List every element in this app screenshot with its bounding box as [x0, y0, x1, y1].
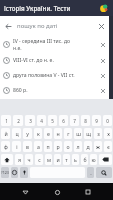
- button[interactable]: Insert suggestion: [96, 69, 109, 82]
- staticText: 8: [84, 118, 87, 124]
- button[interactable]: Back: [18, 185, 32, 199]
- staticText: г: [67, 130, 70, 137]
- staticText: 3: [29, 118, 32, 124]
- staticText: 4: [40, 118, 43, 124]
- button[interactable]: з: [94, 128, 102, 139]
- button[interactable]: друга половина V - VII ст.: [0, 68, 109, 83]
- staticText: 2: [17, 118, 20, 124]
- staticText: VIII-VI ст. до н. е.: [13, 57, 78, 64]
- staticText: 7: [73, 118, 76, 124]
- button[interactable]: 860 р.: [0, 83, 109, 97]
- staticText: х: [107, 130, 110, 137]
- button[interactable]: ?123: [1, 167, 9, 178]
- button[interactable]: п: [44, 141, 52, 152]
- button[interactable]: я: [15, 154, 23, 165]
- staticText: щ: [86, 130, 91, 137]
- button[interactable]: м: [45, 154, 52, 165]
- button[interactable]: Insert suggestion: [96, 38, 109, 51]
- staticText: й: [4, 130, 8, 137]
- staticText: ц: [15, 130, 19, 137]
- staticText: а: [37, 143, 40, 150]
- button[interactable]: і: [12, 141, 21, 152]
- button[interactable]: в: [23, 141, 32, 152]
- staticText: л: [76, 143, 80, 150]
- button[interactable]: ц: [12, 128, 21, 139]
- button[interactable]: Back: [2, 20, 15, 33]
- button[interactable]: й: [1, 128, 10, 139]
- button[interactable]: л: [74, 141, 82, 152]
- staticText: з: [97, 130, 100, 137]
- staticText: ч: [27, 156, 31, 163]
- button[interactable]: Voice input: [20, 167, 28, 178]
- button[interactable]: .: [87, 167, 94, 178]
- button[interactable]: а: [34, 141, 42, 152]
- button[interactable]: ж: [94, 141, 102, 152]
- staticText: у: [26, 130, 29, 137]
- button[interactable]: Backspace: [99, 154, 112, 165]
- button[interactable]: 3: [25, 115, 35, 126]
- button[interactable]: 8: [81, 115, 90, 126]
- button[interactable]: Search: [96, 167, 112, 178]
- button[interactable]: 6: [59, 115, 68, 126]
- staticText: Історія України. Тести: [4, 4, 71, 12]
- button[interactable]: ф: [1, 141, 10, 152]
- button[interactable]: н: [54, 128, 62, 139]
- button[interactable]: Shift: [1, 154, 13, 165]
- staticText: ш: [76, 130, 81, 137]
- staticText: ж: [96, 143, 100, 150]
- button[interactable]: 7: [70, 115, 79, 126]
- staticText: 6: [62, 118, 65, 124]
- button[interactable]: щ: [84, 128, 92, 139]
- button[interactable]: ш: [74, 128, 82, 139]
- button[interactable]: ю: [90, 154, 97, 165]
- staticText: в: [26, 143, 29, 150]
- button[interactable]: Emoji: [11, 167, 18, 178]
- staticText: п: [46, 143, 50, 150]
- button[interactable]: г: [64, 128, 72, 139]
- button[interactable]: Insert suggestion: [96, 84, 109, 97]
- button[interactable]: и: [54, 154, 61, 165]
- button[interactable]: к: [34, 128, 42, 139]
- button[interactable]: Account: [98, 2, 110, 14]
- button[interactable]: Home: [50, 185, 64, 199]
- button[interactable]: є: [104, 141, 112, 152]
- staticText: т: [65, 156, 68, 163]
- button[interactable]: 5: [48, 115, 57, 126]
- staticText: с: [38, 156, 41, 163]
- button[interactable]: 4: [37, 115, 46, 126]
- button[interactable]: б: [81, 154, 88, 165]
- staticText: б: [83, 156, 87, 163]
- button[interactable]: 2: [13, 115, 23, 126]
- button[interactable]: ч: [25, 154, 33, 165]
- staticText: д: [86, 143, 90, 150]
- button[interactable]: д: [84, 141, 92, 152]
- button[interactable]: VIII-VI ст. до н. е.: [0, 53, 109, 68]
- staticText: 860 р.: [13, 87, 78, 94]
- button[interactable]: Recent apps: [81, 185, 95, 199]
- staticText: ?123: [1, 170, 9, 175]
- button[interactable]: х: [104, 128, 112, 139]
- button[interactable]: т: [63, 154, 70, 165]
- staticText: р: [56, 143, 60, 150]
- button[interactable]: Insert suggestion: [96, 54, 109, 67]
- button[interactable]: 1: [1, 115, 11, 126]
- button[interactable]: с: [35, 154, 43, 165]
- button[interactable]: о: [64, 141, 72, 152]
- staticText: о: [66, 143, 70, 150]
- staticText: к: [37, 130, 40, 137]
- staticText: ь: [74, 156, 77, 163]
- staticText: .: [90, 169, 92, 176]
- button[interactable]: е: [44, 128, 52, 139]
- button[interactable]: 9: [92, 115, 101, 126]
- staticText: я: [18, 156, 21, 163]
- staticText: ю: [91, 156, 96, 163]
- staticText: н: [56, 130, 60, 137]
- button[interactable]: у: [23, 128, 32, 139]
- button[interactable]: IV - середина III тис. до н.е.: [0, 36, 109, 53]
- button[interactable]: ь: [72, 154, 79, 165]
- staticText: пошук по даті: [17, 22, 58, 30]
- button[interactable]: 0: [103, 115, 112, 126]
- button[interactable]: р: [54, 141, 62, 152]
- button[interactable]: Clear: [95, 20, 108, 33]
